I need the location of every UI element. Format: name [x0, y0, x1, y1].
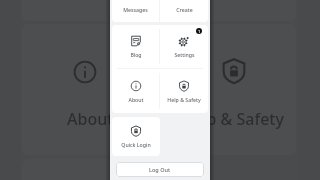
button[interactable]: Log Out — [116, 162, 204, 177]
staticText: 1 — [198, 29, 201, 34]
staticText: Help & Safety — [167, 96, 201, 103]
staticText: Log Out — [149, 166, 171, 173]
staticText: About — [67, 108, 114, 130]
staticText: Help & Safety — [181, 108, 284, 130]
button[interactable]: Create — [160, 0, 208, 22]
button[interactable]: Help & Safety — [160, 69, 208, 113]
staticText: About — [128, 96, 144, 103]
staticText: Quick Login — [121, 141, 151, 148]
staticText: Messages — [123, 6, 148, 13]
staticText: Settings — [174, 51, 195, 58]
staticText: Blog — [130, 51, 142, 58]
staticText: Create — [176, 6, 193, 13]
button[interactable]: Messages — [112, 0, 159, 22]
button[interactable]: Quick Login — [112, 117, 160, 156]
button[interactable]: About — [112, 69, 159, 113]
button[interactable]: Settings — [160, 25, 208, 68]
button[interactable]: Blog — [112, 25, 159, 68]
